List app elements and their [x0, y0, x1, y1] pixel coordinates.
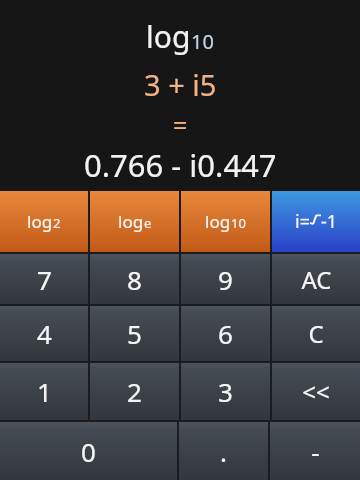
button[interactable]: 0	[0, 422, 177, 480]
button[interactable]: 3	[181, 363, 270, 420]
button[interactable]: 7	[0, 254, 88, 304]
staticText: <<	[302, 375, 330, 408]
staticText: AC	[301, 263, 332, 296]
button[interactable]: log	[181, 191, 270, 252]
button[interactable]: 8	[90, 254, 179, 304]
staticText: 8	[127, 262, 142, 297]
button[interactable]: log	[90, 191, 179, 252]
staticText: 3 + i5	[144, 65, 217, 104]
staticText: -	[311, 434, 320, 469]
staticText: .	[220, 434, 227, 469]
staticText: 0.766 - i0.447	[84, 144, 277, 186]
staticText: -1	[321, 209, 338, 234]
staticText: 10	[231, 214, 246, 232]
staticText: 1	[37, 374, 52, 409]
staticText: 4	[37, 316, 52, 351]
button[interactable]: 1	[0, 363, 88, 420]
button[interactable]: 2	[90, 363, 179, 420]
staticText: i=	[295, 209, 310, 234]
button[interactable]: C	[272, 306, 360, 361]
staticText: e	[144, 214, 152, 232]
button[interactable]: AC	[272, 254, 360, 304]
staticText: 2	[127, 374, 142, 409]
button[interactable]: i equals square root of minus one	[272, 191, 360, 252]
staticText: C	[308, 317, 324, 350]
button[interactable]: 9	[181, 254, 270, 304]
staticText: =	[173, 108, 188, 142]
button[interactable]: 6	[181, 306, 270, 361]
staticText: 9	[218, 262, 233, 297]
staticText: 3	[218, 374, 233, 409]
staticText: log	[27, 210, 53, 233]
button[interactable]: Backspace	[272, 363, 360, 420]
button[interactable]: log	[0, 191, 88, 252]
staticText: 2	[53, 214, 61, 232]
button[interactable]: 4	[0, 306, 88, 361]
button[interactable]: Minus	[270, 422, 360, 480]
staticText: log	[118, 210, 144, 233]
button[interactable]: 5	[90, 306, 179, 361]
staticText: 6	[218, 316, 233, 351]
button[interactable]: Decimal point	[179, 422, 268, 480]
staticText: log	[205, 210, 231, 233]
staticText: 10	[191, 28, 214, 55]
staticText: log	[146, 16, 191, 57]
staticText: 0	[81, 434, 96, 469]
staticText: 5	[127, 316, 142, 351]
staticText: 7	[37, 262, 52, 297]
